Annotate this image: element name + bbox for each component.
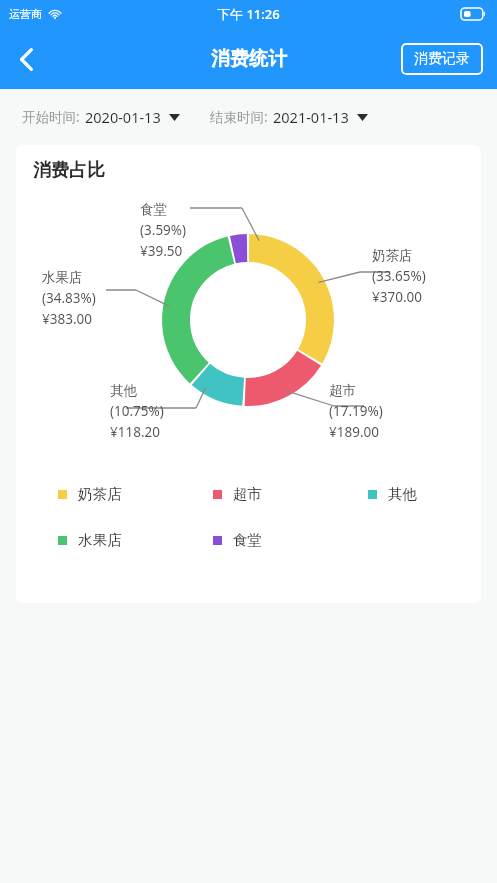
staticText: ¥189.00 bbox=[329, 423, 379, 441]
staticText: (17.19%) bbox=[329, 402, 383, 420]
staticText: (10.75%) bbox=[110, 402, 164, 420]
staticText: 水果店 bbox=[78, 531, 122, 549]
staticText: (33.65%) bbox=[372, 267, 426, 285]
button[interactable]: Back bbox=[0, 33, 52, 85]
staticText: 超市 bbox=[329, 382, 356, 399]
staticText: ¥370.00 bbox=[372, 288, 422, 306]
button[interactable]: 超市 bbox=[171, 485, 326, 503]
staticText: (34.83%) bbox=[42, 289, 96, 307]
staticText: 食堂 bbox=[140, 201, 167, 218]
staticText: 食堂 bbox=[233, 531, 262, 549]
button[interactable]: 水果店 bbox=[16, 531, 171, 549]
staticText: 超市 bbox=[233, 485, 262, 503]
staticText: 奶茶店 bbox=[372, 247, 413, 264]
staticText: ¥118.20 bbox=[110, 423, 160, 441]
staticText: 开始时间: bbox=[22, 108, 80, 126]
button[interactable]: 结束时间: bbox=[210, 107, 368, 127]
staticText: 结束时间: bbox=[210, 108, 268, 126]
button[interactable]: 食堂 bbox=[171, 531, 326, 549]
staticText: 下午 11:26 bbox=[217, 5, 280, 23]
staticText: 其他 bbox=[388, 485, 417, 503]
staticText: 其他 bbox=[110, 382, 137, 399]
staticText: 消费统计 bbox=[211, 47, 287, 71]
button[interactable]: 其他 bbox=[326, 485, 481, 503]
button[interactable]: 开始时间: bbox=[22, 107, 180, 127]
staticText: ¥39.50 bbox=[140, 242, 183, 260]
staticText: 消费占比 bbox=[33, 159, 105, 182]
staticText: 水果店 bbox=[42, 269, 83, 286]
button[interactable]: 消费记录 bbox=[401, 43, 483, 75]
staticText: 消费记录 bbox=[414, 50, 470, 68]
staticText: ¥383.00 bbox=[42, 310, 92, 328]
button[interactable]: 奶茶店 bbox=[16, 485, 171, 503]
staticText: 运营商 bbox=[9, 7, 42, 21]
staticText: 奶茶店 bbox=[78, 485, 122, 503]
staticText: 2020-01-13 bbox=[85, 107, 161, 127]
staticText: (3.59%) bbox=[140, 221, 187, 239]
staticText: 2021-01-13 bbox=[273, 107, 349, 127]
